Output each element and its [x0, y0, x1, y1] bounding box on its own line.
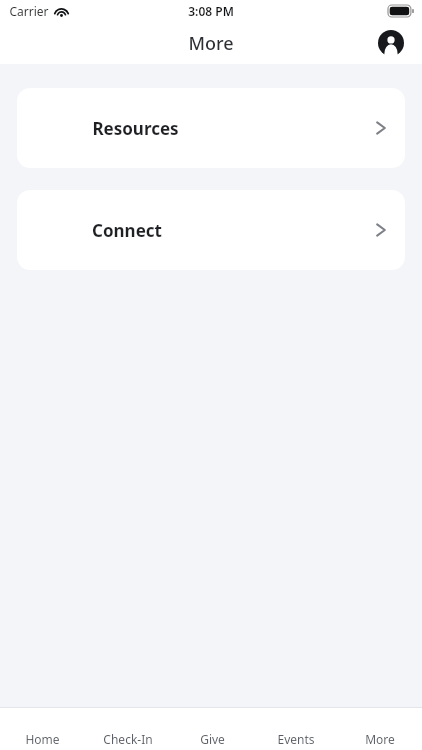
staticText: Resources	[92, 117, 179, 140]
staticText: More	[188, 31, 234, 56]
button[interactable]: Events	[254, 707, 338, 750]
staticText: 3:08 PM	[188, 3, 234, 19]
staticText: Give	[200, 731, 225, 747]
button[interactable]: Give	[170, 707, 254, 750]
staticText: More	[365, 731, 395, 747]
staticText: Home	[25, 731, 60, 747]
button[interactable]: Check-In	[85, 707, 170, 750]
staticText: Events	[277, 731, 315, 747]
button[interactable]: Resources	[17, 88, 405, 168]
staticText: Check-In	[103, 731, 153, 747]
staticText: Carrier	[9, 3, 49, 19]
button[interactable]: Profile	[374, 26, 408, 60]
button[interactable]: Home	[0, 707, 85, 750]
staticText: Connect	[92, 219, 162, 242]
button[interactable]: More	[338, 707, 422, 750]
button[interactable]: Connect	[17, 190, 405, 270]
